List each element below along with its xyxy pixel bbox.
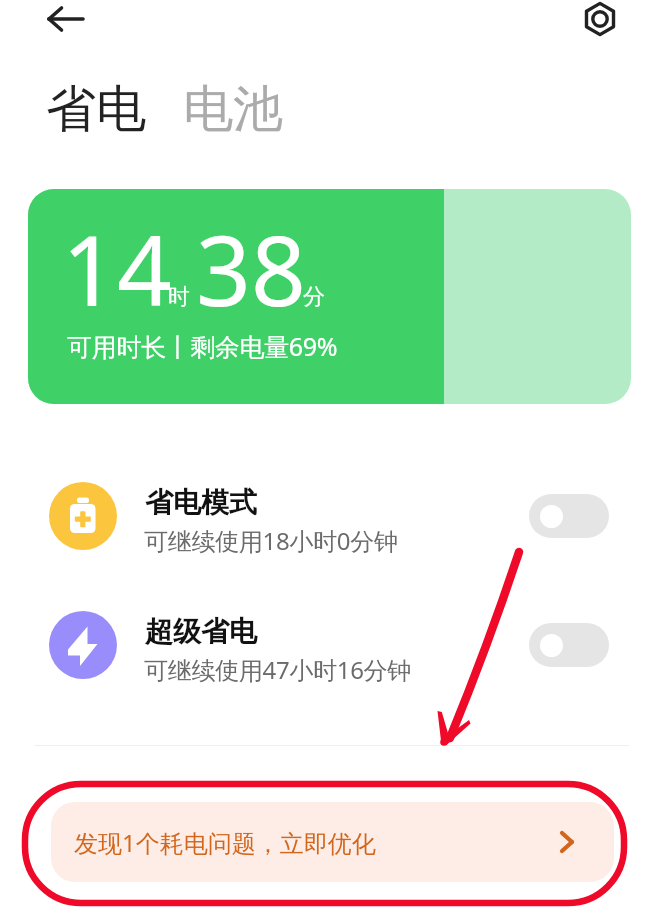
staticText: 14 [62, 203, 172, 334]
button[interactable]: Toggle 省电模式 [529, 494, 609, 538]
staticText: 可继续使用18小时0分钟 [144, 524, 398, 557]
staticText: 38 [196, 203, 306, 334]
staticText: 省电 [46, 78, 146, 141]
staticText: 发现1个耗电问题，立即优化 [74, 826, 376, 859]
button[interactable]: 省电 [46, 78, 146, 141]
button[interactable]: 14 [28, 189, 631, 404]
button[interactable]: 省电模式 [0, 457, 660, 575]
staticText: 电池 [183, 78, 283, 141]
button[interactable]: 发现1个耗电问题，立即优化 [51, 802, 614, 882]
button[interactable]: 超级省电 [0, 586, 660, 704]
staticText: 时 [168, 283, 190, 311]
button[interactable]: Toggle 超级省电 [529, 623, 609, 667]
staticText: 可用时长丨剩余电量69% [67, 329, 338, 363]
staticText: 省电模式 [145, 485, 257, 520]
button[interactable]: Settings [572, 0, 628, 47]
button[interactable]: Back [38, 0, 94, 47]
button[interactable]: 电池 [183, 78, 283, 141]
staticText: 超级省电 [145, 614, 257, 649]
staticText: 可继续使用47小时16分钟 [144, 653, 412, 686]
staticText: 分 [303, 283, 325, 311]
